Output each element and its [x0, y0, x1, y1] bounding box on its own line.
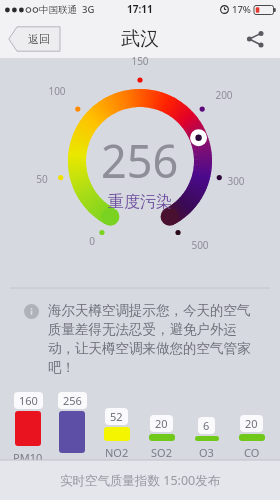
staticText: 200	[210, 88, 238, 102]
staticText: 256	[101, 130, 179, 191]
staticText: PM2.5	[56, 457, 89, 460]
staticText: 160	[19, 393, 38, 408]
staticText: 300	[222, 174, 250, 188]
staticText: 海尔天樽空调提示您，今天的空气质量差得无法忍受，避免户外运动，让天樽空调来做您的…	[48, 302, 262, 376]
button[interactable]: 160	[6, 392, 50, 460]
button[interactable]: 256	[50, 392, 94, 460]
staticText: 50	[28, 172, 56, 186]
staticText: 256	[63, 393, 82, 408]
staticText: 52	[110, 409, 123, 424]
staticText: O3	[199, 445, 214, 460]
staticText: 6	[203, 418, 210, 433]
button[interactable]: 52	[94, 408, 139, 460]
staticText: 20	[155, 416, 168, 431]
button[interactable]: 20	[229, 415, 274, 460]
staticText: 100	[43, 84, 71, 98]
staticText: PM10	[13, 450, 43, 460]
button[interactable]: Share	[240, 24, 270, 54]
button[interactable]: 返回	[8, 26, 64, 52]
staticText: 武汉	[121, 27, 159, 51]
staticText: CO	[244, 445, 260, 460]
staticText: 17:11	[127, 2, 153, 16]
staticText: 20	[245, 416, 258, 431]
staticText: 500	[186, 238, 214, 252]
staticText: 重度污染	[108, 192, 172, 212]
staticText: 返回	[28, 32, 50, 46]
staticText: 3G	[82, 3, 95, 16]
button[interactable]: 6	[184, 417, 229, 460]
staticText: NO2	[105, 445, 129, 460]
staticText: 150	[126, 54, 154, 68]
staticText: 实时空气质量指数 15:00发布	[60, 472, 221, 489]
staticText: SO2	[151, 445, 172, 460]
button[interactable]: 20	[139, 415, 184, 460]
staticText: 17%	[232, 3, 251, 16]
staticText: 0	[78, 234, 106, 248]
staticText: 中国联通	[39, 4, 77, 16]
